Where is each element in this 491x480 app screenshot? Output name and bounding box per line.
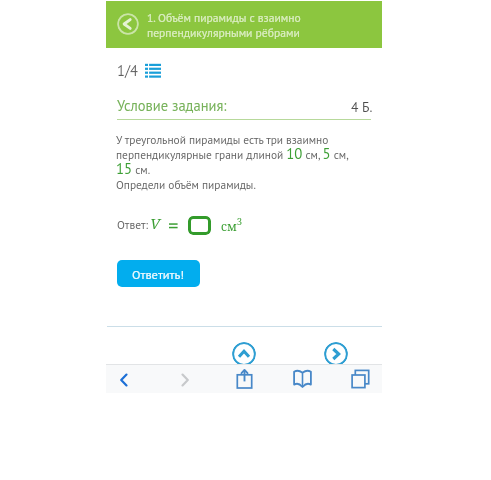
- button[interactable]: Next task: [324, 342, 348, 366]
- button[interactable]: Task list: [145, 63, 161, 79]
- staticText: V: [150, 213, 161, 233]
- staticText: Ответ:: [117, 217, 149, 232]
- button[interactable]: Back: [117, 13, 139, 35]
- button[interactable]: Browser back: [117, 372, 131, 388]
- button[interactable]: Share: [235, 368, 254, 390]
- staticText: 1. Объём пирамиды с взаимно перпендикуля…: [147, 10, 301, 40]
- button[interactable]: Browser forward: [178, 372, 192, 388]
- staticText: У треугольной пирамиды есть три взаимно …: [116, 132, 349, 192]
- staticText: Ответить!: [132, 266, 185, 282]
- staticText: Условие задания:: [117, 96, 227, 115]
- staticText: см3: [221, 215, 243, 235]
- button[interactable]: Ответить!: [117, 260, 200, 287]
- staticText: 4 Б.: [351, 98, 373, 116]
- button[interactable]: Bookmarks: [293, 370, 312, 388]
- button[interactable]: Answer input: [188, 216, 211, 235]
- staticText: 1/4: [117, 61, 138, 80]
- button[interactable]: Tabs: [351, 369, 370, 389]
- button[interactable]: Scroll to top: [232, 342, 256, 366]
